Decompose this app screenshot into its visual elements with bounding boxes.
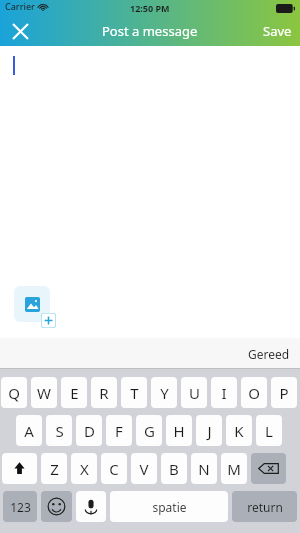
button[interactable]: W bbox=[31, 377, 57, 408]
button[interactable]: F bbox=[106, 415, 132, 446]
staticText: spatie bbox=[152, 499, 187, 515]
button[interactable]: L bbox=[256, 415, 282, 446]
staticText: G bbox=[144, 421, 155, 441]
staticText: T bbox=[130, 383, 139, 403]
button[interactable]: U bbox=[181, 377, 207, 408]
staticText: F bbox=[115, 421, 123, 441]
staticText: Y bbox=[160, 383, 169, 403]
staticText: Gereed bbox=[248, 346, 290, 362]
button[interactable]: Dictate bbox=[76, 491, 106, 522]
button[interactable]: I bbox=[211, 377, 237, 408]
button[interactable]: B bbox=[161, 453, 187, 484]
button[interactable]: Add photo bbox=[14, 286, 50, 322]
button[interactable]: H bbox=[166, 415, 192, 446]
button[interactable]: J bbox=[196, 415, 222, 446]
staticText: J bbox=[207, 421, 212, 441]
button[interactable]: 123 bbox=[3, 491, 37, 522]
button[interactable]: C bbox=[101, 453, 127, 484]
staticText: Post a message bbox=[102, 22, 198, 40]
button[interactable]: Y bbox=[151, 377, 177, 408]
staticText: 12:50 PM bbox=[130, 2, 170, 14]
staticText: M bbox=[227, 459, 241, 479]
button[interactable]: Emoji bbox=[41, 491, 72, 522]
button[interactable]: S bbox=[46, 415, 72, 446]
staticText: N bbox=[198, 459, 210, 479]
staticText: Save bbox=[263, 22, 292, 40]
button[interactable]: Backspace bbox=[251, 453, 286, 484]
staticText: E bbox=[70, 383, 79, 403]
button[interactable]: X bbox=[71, 453, 97, 484]
staticText: Z bbox=[50, 459, 59, 479]
staticText: Q bbox=[8, 383, 20, 403]
staticText: D bbox=[84, 421, 95, 441]
staticText: Carrier bbox=[5, 0, 35, 12]
button[interactable]: Shift bbox=[2, 453, 37, 484]
button[interactable]: G bbox=[136, 415, 162, 446]
staticText: K bbox=[234, 421, 244, 441]
button[interactable]: T bbox=[121, 377, 147, 408]
button[interactable]: P bbox=[271, 377, 297, 408]
button[interactable]: R bbox=[91, 377, 117, 408]
staticText: return bbox=[247, 499, 283, 515]
button[interactable]: Add bbox=[41, 313, 56, 328]
button[interactable]: Gereed bbox=[248, 346, 290, 362]
staticText: I bbox=[221, 383, 227, 403]
button[interactable]: return bbox=[232, 491, 297, 522]
staticText: V bbox=[139, 459, 149, 479]
button[interactable]: N bbox=[191, 453, 217, 484]
button[interactable]: Save bbox=[263, 22, 292, 40]
button[interactable]: Close bbox=[0, 16, 40, 46]
staticText: L bbox=[265, 421, 273, 441]
staticText: R bbox=[99, 383, 109, 403]
button[interactable]: M bbox=[221, 453, 247, 484]
button[interactable]: A bbox=[16, 415, 42, 446]
staticText: O bbox=[248, 383, 260, 403]
staticText: C bbox=[109, 459, 119, 479]
button[interactable]: spatie bbox=[110, 491, 228, 522]
staticText: U bbox=[189, 383, 200, 403]
button[interactable]: Z bbox=[41, 453, 67, 484]
staticText: W bbox=[37, 383, 51, 403]
button[interactable]: D bbox=[76, 415, 102, 446]
staticText: P bbox=[279, 383, 289, 403]
button[interactable]: V bbox=[131, 453, 157, 484]
button[interactable]: O bbox=[241, 377, 267, 408]
staticText: B bbox=[169, 459, 179, 479]
button[interactable]: Q bbox=[1, 377, 27, 408]
staticText: 123 bbox=[10, 499, 31, 515]
staticText: H bbox=[173, 421, 185, 441]
button[interactable]: K bbox=[226, 415, 252, 446]
staticText: S bbox=[55, 421, 64, 441]
staticText: A bbox=[24, 421, 34, 441]
staticText: X bbox=[80, 459, 89, 479]
button[interactable]: E bbox=[61, 377, 87, 408]
